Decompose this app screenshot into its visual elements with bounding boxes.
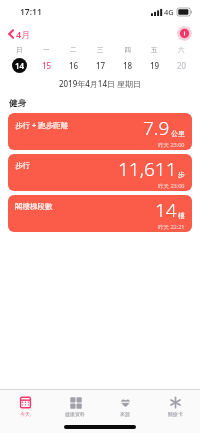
staticText: 二 [70,46,77,54]
staticText: 步 [178,170,185,179]
staticText: 14 [15,60,25,71]
staticText: 11,611 [118,156,177,182]
staticText: 4月 [16,28,31,40]
staticText: 來源 [120,411,130,417]
staticText: 昨天 23:00 [158,182,185,190]
staticText: 今天 [20,411,30,417]
staticText: 三 [97,46,104,54]
staticText: 步行 + 跑步距離 [15,120,69,130]
button[interactable]: 19 [141,56,168,74]
button[interactable]: 4月 [6,26,33,42]
staticText: 19 [150,60,160,71]
staticText: 健康資料 [65,411,85,417]
staticText: 16 [69,60,79,71]
button[interactable]: 今天 [0,390,50,422]
button[interactable]: 閣樓梯段數 [8,195,192,232]
staticText: 14 [155,197,177,223]
staticText: 閣樓梯段數 [15,202,53,211]
staticText: 20 [177,60,187,71]
staticText: 昨天 22:21 [158,223,185,231]
staticText: 2019年4月14日 星期日 [0,78,200,89]
staticText: 昨天 23:00 [158,141,185,149]
staticText: 四 [124,46,131,54]
button[interactable]: 醫療卡 [150,390,200,422]
button[interactable]: 20 [168,56,195,74]
staticText: 五 [151,46,158,54]
staticText: 六 [178,46,185,54]
button[interactable]: 15 [33,56,60,74]
staticText: 18 [123,60,133,71]
button[interactable]: 14 [5,56,33,74]
staticText: 一 [43,46,50,54]
button[interactable]: 步行 + 跑步距離 [8,113,192,150]
button[interactable]: 健康資料 [50,390,100,422]
staticText: 健身 [9,98,26,109]
staticText: 步行 [15,161,30,170]
button[interactable]: Profile [177,26,192,41]
staticText: 醫療卡 [168,411,183,417]
staticText: 17 [96,60,106,71]
button[interactable]: 17 [87,56,114,74]
staticText: 日 [16,46,23,54]
button[interactable]: 來源 [100,390,150,422]
button[interactable]: 18 [114,56,141,74]
staticText: 17:11 [20,6,42,18]
button[interactable]: 步行 [8,154,192,191]
staticText: 公里 [171,129,185,138]
staticText: 7.9 [143,115,170,141]
staticText: 15 [42,60,52,71]
staticText: 4G [164,7,174,17]
staticText: 樓 [178,211,185,220]
button[interactable]: 16 [60,56,87,74]
